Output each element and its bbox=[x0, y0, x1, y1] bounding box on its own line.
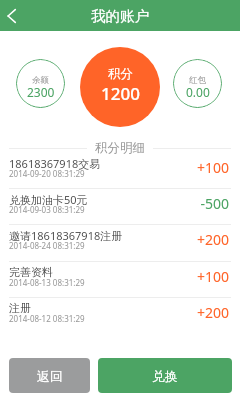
button[interactable]: 余额 bbox=[16, 59, 65, 108]
staticText: 兑换加油卡50元 bbox=[9, 192, 88, 207]
staticText: 2014-08-13 08:31:29 bbox=[9, 277, 85, 288]
button[interactable]: 邀请18618367918注册 bbox=[0, 225, 240, 262]
staticText: 余额 bbox=[32, 75, 49, 86]
staticText: 2014-08-12 08:31:29 bbox=[9, 313, 85, 324]
staticText: 2014-08-24 08:31:29 bbox=[9, 240, 85, 251]
button[interactable]: 积分 bbox=[80, 47, 160, 127]
button[interactable]: 18618367918交易 bbox=[0, 153, 240, 189]
staticText: 0.00 bbox=[186, 84, 210, 100]
button[interactable]: 兑换加油卡50元 bbox=[0, 189, 240, 225]
staticText: 积分 bbox=[108, 66, 133, 82]
staticText: 18618367918交易 bbox=[9, 156, 101, 171]
staticText: 红包 bbox=[189, 75, 206, 86]
staticText: 2014-09-20 08:31:29 bbox=[9, 168, 85, 179]
button[interactable]: 注册 bbox=[0, 298, 240, 334]
staticText: -500 bbox=[200, 194, 229, 213]
staticText: 2300 bbox=[27, 84, 55, 100]
staticText: 完善资料 bbox=[9, 265, 53, 279]
button[interactable]: 返回 bbox=[9, 358, 90, 393]
staticText: +100 bbox=[196, 158, 229, 177]
staticText: 兑换 bbox=[152, 368, 178, 384]
button[interactable]: 兑换 bbox=[98, 358, 232, 393]
button[interactable]: 完善资料 bbox=[0, 262, 240, 298]
staticText: 邀请18618367918注册 bbox=[9, 228, 123, 243]
button[interactable]: Back bbox=[0, 0, 22, 31]
staticText: 返回 bbox=[37, 368, 63, 384]
staticText: 注册 bbox=[9, 301, 31, 315]
staticText: +200 bbox=[196, 230, 229, 249]
staticText: +100 bbox=[196, 267, 229, 286]
button[interactable]: 红包 bbox=[173, 59, 222, 108]
staticText: 1200 bbox=[101, 82, 140, 105]
staticText: 我的账户 bbox=[0, 7, 240, 25]
staticText: 积分明细 bbox=[95, 140, 145, 156]
staticText: 2014-09-03 08:31:29 bbox=[9, 204, 85, 215]
staticText: +200 bbox=[196, 303, 229, 322]
